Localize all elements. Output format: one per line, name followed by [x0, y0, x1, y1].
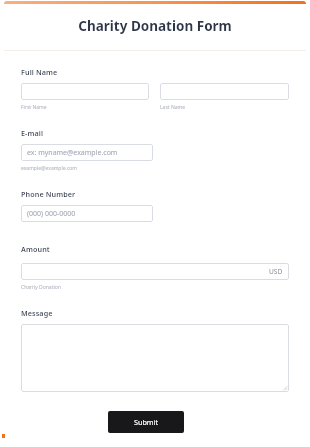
- button[interactable]: [21, 324, 289, 392]
- staticText: USD: [269, 267, 283, 276]
- staticText: Charity Donation: [21, 284, 61, 291]
- staticText: example@example.com: [21, 165, 77, 172]
- staticText: Amount: [21, 244, 50, 254]
- button[interactable]: ex: myname@example.com: [21, 144, 153, 161]
- staticText: Full Name: [21, 67, 58, 77]
- staticText: Submit: [134, 417, 158, 427]
- button[interactable]: USD: [21, 263, 289, 280]
- button[interactable]: (000) 000-0000: [21, 205, 153, 222]
- staticText: Phone Number: [21, 189, 76, 199]
- button[interactable]: [160, 83, 289, 100]
- staticText: Charity Donation Form: [0, 17, 310, 35]
- button[interactable]: Submit: [108, 411, 184, 433]
- staticText: Message: [21, 308, 53, 318]
- button[interactable]: [21, 83, 149, 100]
- staticText: Last Name: [160, 104, 186, 111]
- staticText: (000) 000-0000: [27, 209, 76, 219]
- staticText: ex: myname@example.com: [27, 148, 118, 158]
- staticText: First Name: [21, 104, 47, 111]
- staticText: E-mail: [21, 128, 44, 138]
